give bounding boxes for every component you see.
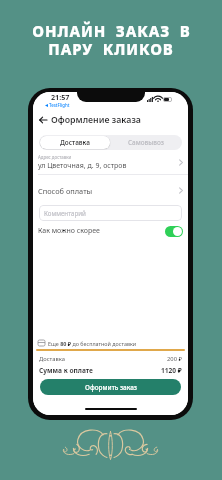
button[interactable]: Доставка: [40, 136, 110, 149]
button[interactable]: Back: [37, 114, 49, 126]
staticText: Доставка: [60, 138, 90, 147]
button[interactable]: Адрес доставки: [38, 153, 183, 172]
staticText: TestFlight: [49, 102, 70, 108]
staticText: Самовывоз: [128, 138, 164, 147]
staticText: ул Цветочная, д. 9, остров: [38, 161, 127, 171]
staticText: Еще 80 ₽ до бесплатной доставки: [48, 340, 137, 347]
staticText: 21:57: [51, 92, 70, 102]
button[interactable]: Способ оплаты: [38, 183, 183, 198]
staticText: 200 ₽: [167, 355, 182, 363]
staticText: Оформление заказа: [51, 114, 141, 126]
button[interactable]: Самовывоз: [110, 136, 181, 149]
staticText: 1120 ₽: [161, 366, 182, 375]
button[interactable]: Комментарий: [39, 205, 182, 221]
button[interactable]: As soon as possible toggle: [165, 226, 183, 237]
staticText: ПАРУ КЛИКОВ: [48, 39, 174, 59]
staticText: Сумма к оплате: [39, 366, 161, 375]
staticText: ОНЛАЙН ЗАКАЗ В: [32, 21, 191, 41]
staticText: Адрес доставки: [38, 154, 72, 160]
staticText: Доставка: [39, 355, 167, 363]
button[interactable]: Оформить заказ: [40, 379, 181, 395]
staticText: Оформить заказ: [85, 383, 137, 392]
staticText: Как можно скорее: [38, 226, 165, 236]
staticText: Способ оплаты: [38, 186, 179, 196]
staticText: Комментарий: [44, 209, 86, 217]
